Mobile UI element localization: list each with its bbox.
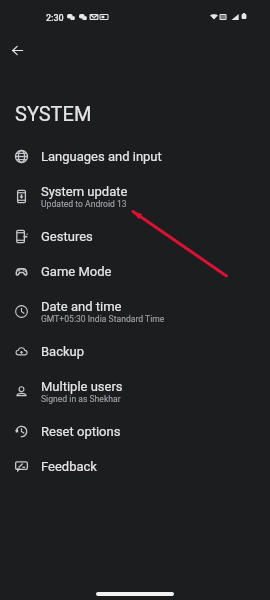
staticText: Multiple users xyxy=(41,379,123,394)
staticText: 2:30 xyxy=(46,13,64,24)
button[interactable]: Gestures xyxy=(0,219,270,254)
staticText: System update xyxy=(41,184,128,199)
button[interactable]: Backup xyxy=(0,334,270,369)
staticText: Backup xyxy=(41,344,85,359)
staticText: Date and time xyxy=(41,299,122,314)
staticText: SYSTEM xyxy=(15,102,92,125)
button[interactable]: Languages and input xyxy=(0,139,270,174)
staticText: Signed in as Shekhar xyxy=(41,394,121,404)
button[interactable]: Back xyxy=(5,39,28,62)
button[interactable]: Multiple users xyxy=(0,369,270,414)
staticText: Gestures xyxy=(41,229,93,244)
button[interactable]: Reset options xyxy=(0,414,270,449)
staticText: Reset options xyxy=(41,424,121,439)
staticText: Game Mode xyxy=(41,264,112,279)
button[interactable]: Feedback xyxy=(0,449,270,484)
button[interactable]: Date and time xyxy=(0,289,270,334)
staticText: Updated to Android 13 xyxy=(41,199,127,209)
staticText: GMT+05:30 India Standard Time xyxy=(41,314,165,324)
button[interactable]: Game Mode xyxy=(0,254,270,289)
staticText: Feedback xyxy=(41,459,97,474)
staticText: Languages and input xyxy=(41,149,162,164)
button[interactable]: System update xyxy=(0,174,270,219)
